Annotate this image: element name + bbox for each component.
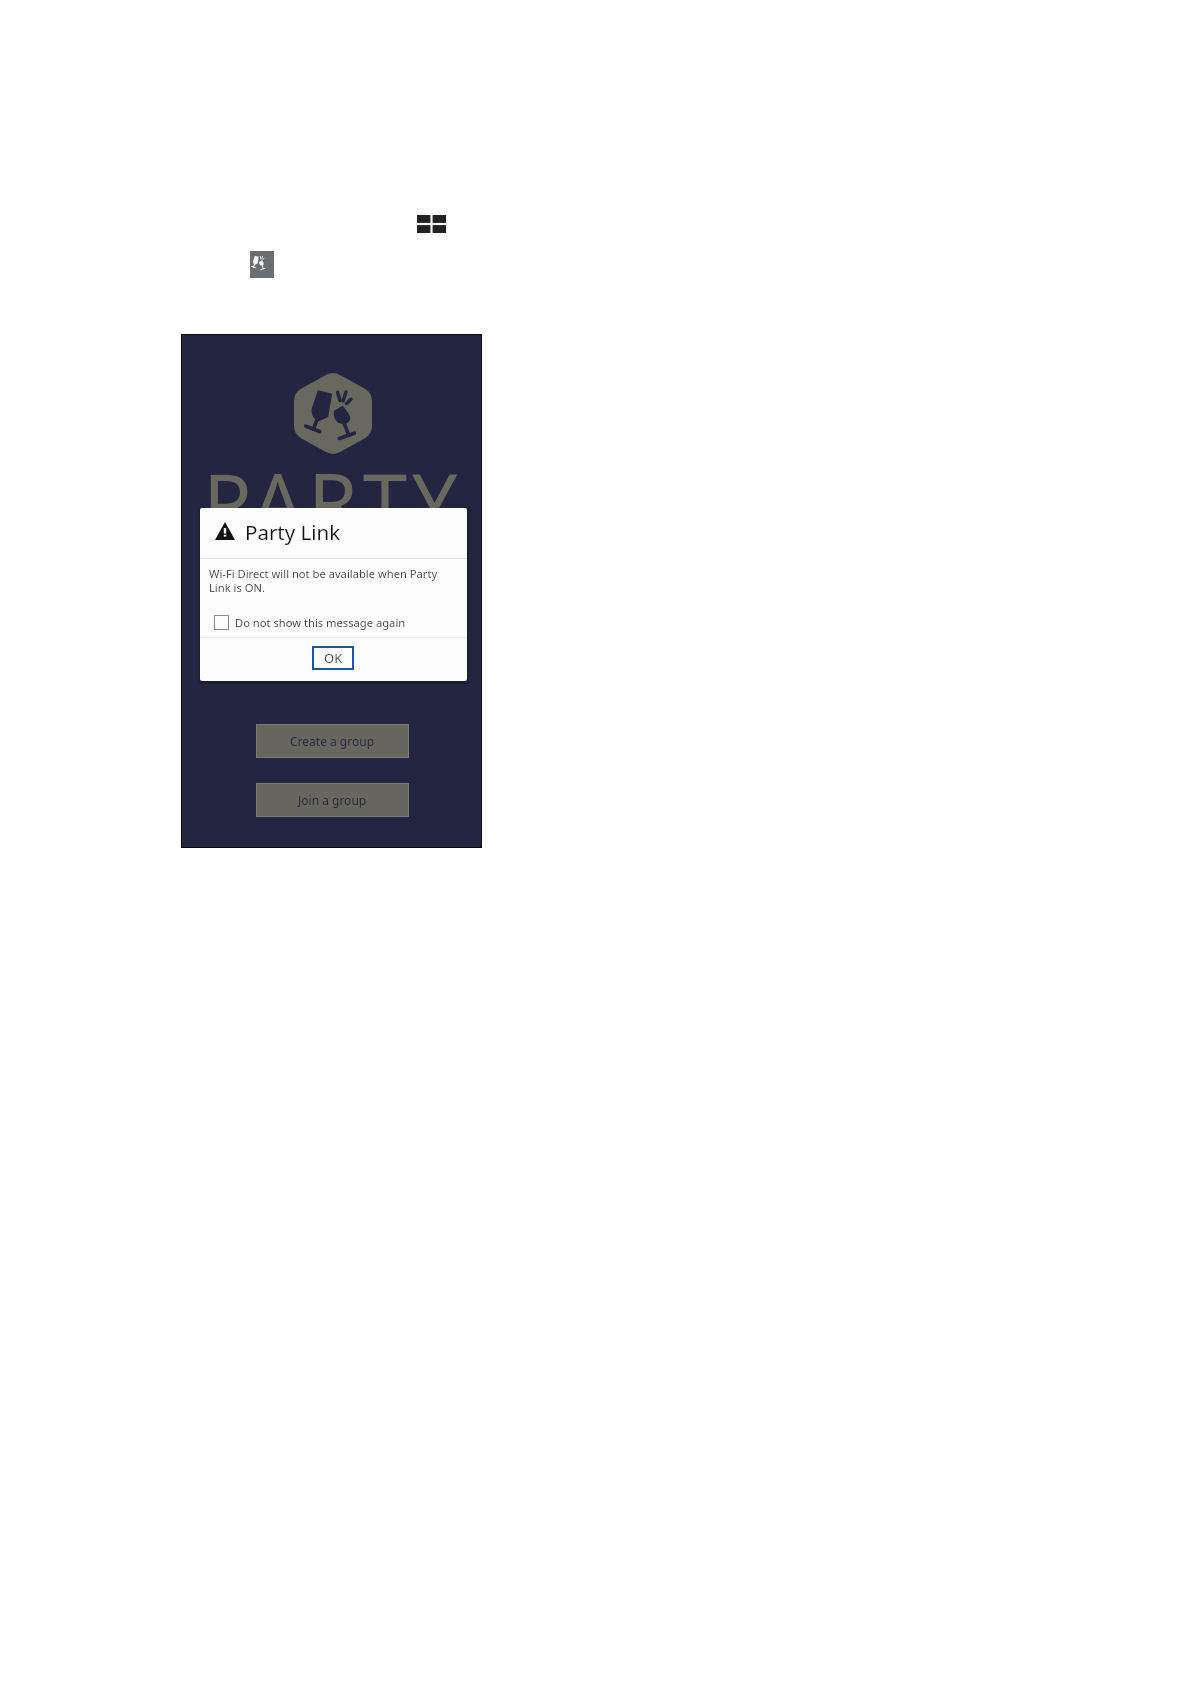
staticText: OK [324, 649, 343, 667]
staticText: PARTY [203, 446, 463, 555]
staticText: Party Link [245, 518, 341, 546]
staticText: Join a group [298, 792, 367, 808]
button[interactable]: Apps grid [417, 215, 446, 233]
button[interactable]: OK [312, 646, 354, 670]
staticText: Do not show this message again [235, 615, 406, 630]
button[interactable]: Join a group [256, 783, 409, 817]
staticText: Create a group [290, 733, 375, 749]
button[interactable]: Party Link app icon [250, 251, 274, 278]
staticText: Wi-Fi Direct will not be available when … [209, 566, 449, 595]
button[interactable]: Do not show this message again [214, 615, 406, 630]
button[interactable]: Create a group [256, 724, 409, 758]
